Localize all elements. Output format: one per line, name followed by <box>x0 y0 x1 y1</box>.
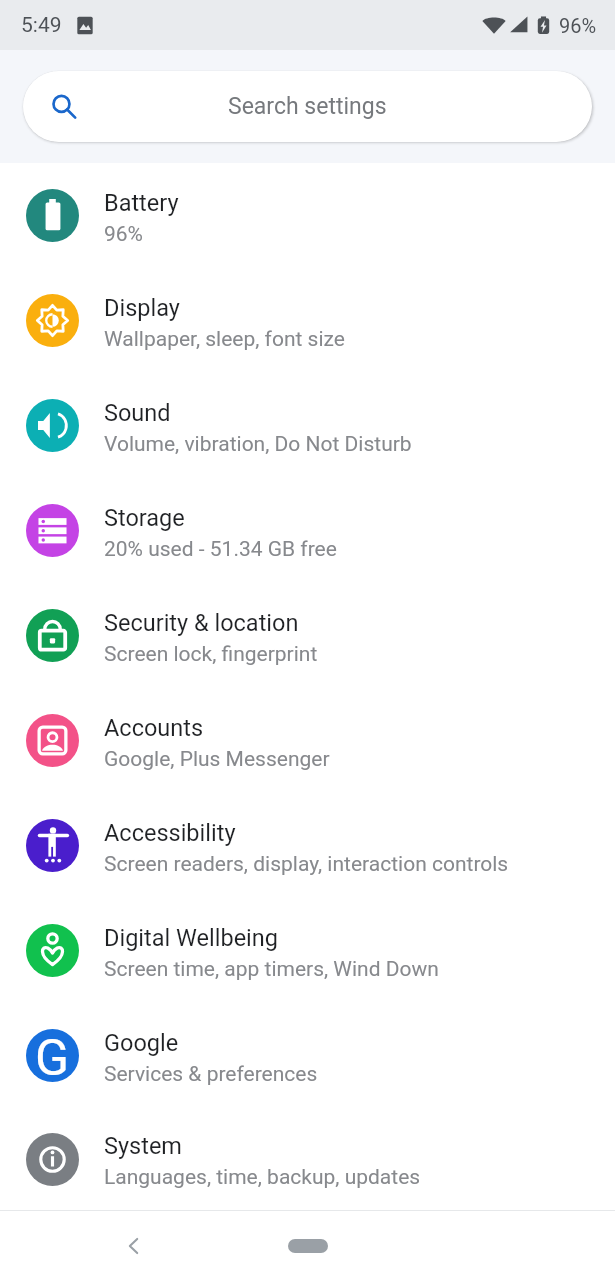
button[interactable]: Sound <box>0 373 615 478</box>
staticText: Services & preferences <box>104 1062 318 1087</box>
staticText: Storage <box>104 504 185 532</box>
staticText: 20% used - 51.34 GB free <box>104 537 337 562</box>
button[interactable]: Battery <box>0 163 615 268</box>
staticText: Accessibility <box>104 819 236 847</box>
staticText: G <box>35 1029 70 1079</box>
staticText: Google, Plus Messenger <box>104 747 330 772</box>
staticText: 5:49 <box>21 13 62 38</box>
staticText: Screen time, app timers, Wind Down <box>104 957 439 982</box>
staticText: 96% <box>104 222 143 247</box>
staticText: Search settings <box>228 93 387 120</box>
button[interactable]: Security & location <box>0 583 615 688</box>
button[interactable]: Search settings <box>23 71 592 142</box>
staticText: Display <box>104 294 180 322</box>
staticText: 96% <box>559 14 597 37</box>
staticText: Security & location <box>104 609 299 637</box>
staticText: Languages, time, backup, updates <box>104 1165 421 1190</box>
button[interactable]: Accounts <box>0 688 615 793</box>
button[interactable]: System <box>0 1108 615 1210</box>
staticText: Screen lock, fingerprint <box>104 642 318 667</box>
button[interactable]: Home <box>288 1239 328 1253</box>
staticText: Screen readers, display, interaction con… <box>104 852 509 877</box>
staticText: System <box>104 1132 182 1160</box>
button[interactable]: Accessibility <box>0 793 615 898</box>
button[interactable]: Back <box>118 1230 150 1262</box>
staticText: Accounts <box>104 714 204 742</box>
button[interactable]: Storage <box>0 478 615 583</box>
staticText: Google <box>104 1029 179 1057</box>
button[interactable]: Display <box>0 268 615 373</box>
button[interactable]: G <box>0 1003 615 1108</box>
button[interactable]: Digital Wellbeing <box>0 898 615 1003</box>
staticText: Digital Wellbeing <box>104 924 278 952</box>
staticText: Volume, vibration, Do Not Disturb <box>104 432 412 457</box>
staticText: Battery <box>104 189 179 217</box>
staticText: Sound <box>104 399 171 427</box>
staticText: Wallpaper, sleep, font size <box>104 327 345 352</box>
